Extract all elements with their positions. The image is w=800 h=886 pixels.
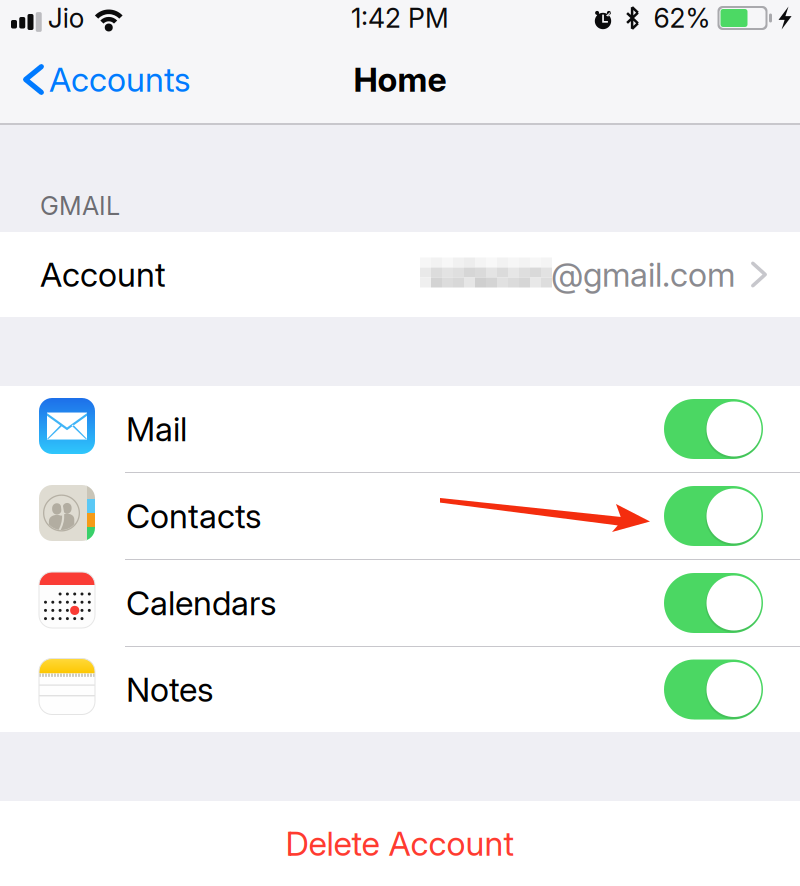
button[interactable]: Mail [0, 386, 800, 472]
button[interactable]: Delete Account [0, 801, 800, 886]
button[interactable]: Accounts [0, 40, 201, 119]
staticText: Mail [126, 409, 187, 449]
button[interactable]: Calendars [0, 560, 800, 646]
staticText: Jio [48, 2, 85, 34]
staticText: Delete Account [285, 823, 514, 864]
staticText: Home [353, 59, 446, 100]
staticText: Notes [126, 669, 214, 710]
button[interactable]: Contacts [0, 473, 800, 559]
staticText: GMAIL [40, 190, 120, 221]
staticText: @gmail.com [551, 254, 735, 295]
staticText: Calendars [126, 583, 277, 623]
button[interactable]: Notes [0, 647, 800, 732]
button[interactable]: Account [0, 232, 800, 317]
staticText: Accounts [49, 59, 191, 100]
staticText: 1:42 PM [351, 2, 449, 34]
staticText: 62% [653, 2, 710, 34]
staticText: Contacts [126, 496, 262, 536]
staticText: Account [40, 254, 166, 295]
